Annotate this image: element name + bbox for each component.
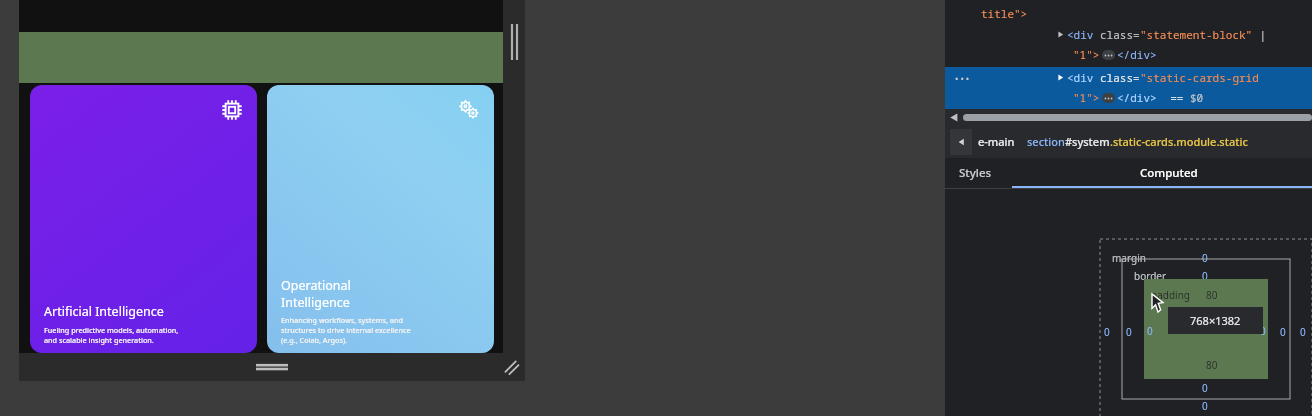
staticText: "static-cards-grid [1140, 70, 1259, 85]
staticText: "statement-block" [1140, 27, 1253, 42]
staticText: <div [1067, 70, 1100, 85]
staticText: 0 [1202, 399, 1208, 413]
staticText: 0 [1202, 251, 1208, 265]
staticText: Enhancing workflows, systems, and [281, 315, 403, 325]
staticText: 768×1382 [1190, 313, 1241, 328]
staticText: e-main [978, 134, 1015, 149]
button[interactable]: Resize viewport [19, 353, 525, 381]
staticText: 0 [1260, 324, 1266, 338]
staticText: 80 [1206, 288, 1218, 302]
staticText: #system [1065, 134, 1110, 149]
staticText: </div> [1117, 47, 1157, 62]
staticText: "1"> [1073, 90, 1100, 105]
staticText: 0 [1126, 325, 1132, 339]
staticText: ••• [954, 72, 971, 84]
staticText: 80 [1206, 358, 1218, 372]
staticText: border [1134, 269, 1167, 283]
staticText: Artificial Intelligence [44, 303, 164, 320]
staticText: 0 [1300, 325, 1306, 339]
staticText: class= [1100, 27, 1140, 42]
staticText: 0 [1280, 325, 1286, 339]
button[interactable]: Previous breadcrumb [950, 129, 972, 155]
staticText: "1"> [1073, 47, 1100, 62]
staticText: Fueling predictive models, automation, [44, 325, 179, 335]
button[interactable]: Expand [1102, 50, 1115, 60]
staticText: and scalable insight generation. [44, 335, 154, 345]
staticText: 0 [1202, 381, 1208, 395]
staticText: .static-cards.module.static [1110, 134, 1248, 149]
button[interactable]: Operational intelligence gears [267, 85, 494, 353]
staticText: class= [1100, 70, 1140, 85]
staticText: Styles [959, 165, 992, 181]
staticText: 0 [1147, 324, 1153, 338]
staticText: == [1157, 90, 1190, 105]
staticText: title"> [981, 6, 1028, 21]
staticText: Computed [1140, 165, 1198, 181]
staticText: Operational Intelligence [281, 277, 351, 310]
staticText: $0 [1190, 90, 1204, 105]
staticText: structures to drive internal excellence [281, 325, 411, 335]
other: Artificial intelligence chip [221, 99, 243, 121]
staticText: <div [1067, 27, 1100, 42]
button[interactable]: Computed [1012, 158, 1312, 188]
staticText: section [1027, 134, 1065, 149]
button[interactable]: Artificial intelligence chip [30, 85, 257, 353]
staticText: 0 [1104, 325, 1110, 339]
staticText: </div> [1117, 90, 1157, 105]
staticText: 0 [1202, 269, 1208, 283]
other: Operational intelligence gears [458, 99, 480, 121]
button[interactable]: ••• [945, 67, 1312, 109]
button[interactable]: Styles [959, 158, 992, 188]
staticText: (e.g., Colab, Argos). [281, 335, 348, 345]
staticText: margin [1112, 251, 1146, 265]
staticText: | [1253, 27, 1267, 42]
button[interactable]: Expand [1102, 93, 1115, 103]
button[interactable]: section [1027, 134, 1248, 149]
staticText: padding [1151, 288, 1190, 302]
